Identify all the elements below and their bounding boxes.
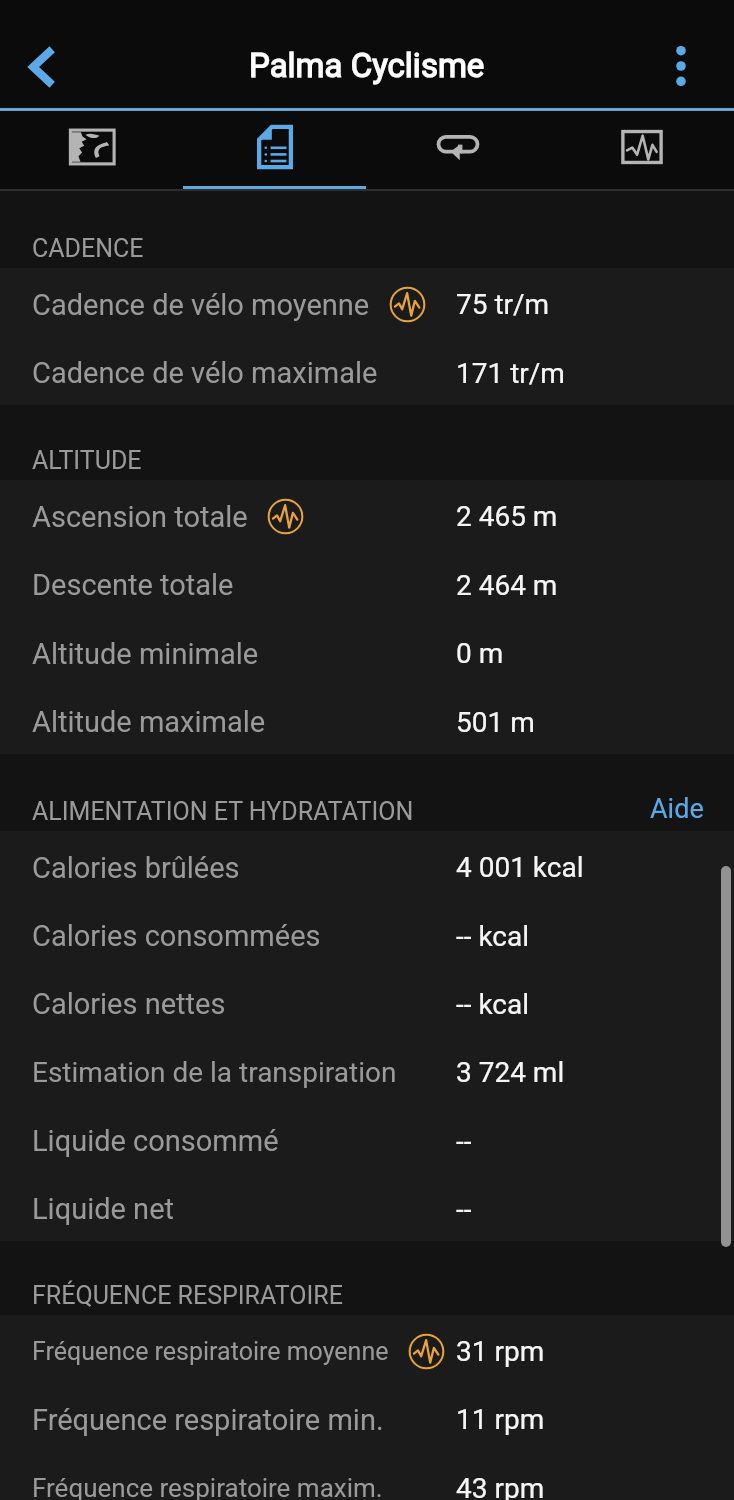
staticText: Altitude maximale bbox=[32, 705, 266, 739]
button[interactable]: Fréquence respiratoire maxim. bbox=[0, 1452, 734, 1500]
button[interactable]: Détails bbox=[183, 111, 366, 191]
staticText: 75 tr/m bbox=[456, 288, 550, 321]
button[interactable]: Liquide consommé bbox=[0, 1105, 734, 1173]
staticText: 171 tr/m bbox=[456, 357, 565, 390]
staticText: Descente totale bbox=[32, 568, 234, 602]
staticText: -- kcal bbox=[456, 920, 530, 953]
staticText: Fréquence respiratoire moyenne bbox=[32, 1337, 389, 1366]
button[interactable]: Descente totale bbox=[0, 549, 734, 617]
button[interactable]: Fréquence respiratoire min. bbox=[0, 1383, 734, 1452]
button[interactable]: Graphiques bbox=[550, 111, 734, 191]
button[interactable]: Aide bbox=[620, 785, 734, 831]
staticText: Calories consommées bbox=[32, 919, 321, 953]
button[interactable]: Calories nettes bbox=[0, 968, 734, 1036]
staticText: Cadence de vélo maximale bbox=[32, 356, 378, 390]
button[interactable]: Calories consommées bbox=[0, 900, 734, 968]
staticText: Cadence de vélo moyenne bbox=[32, 288, 370, 322]
staticText: -- bbox=[456, 1193, 472, 1226]
staticText: -- bbox=[456, 1125, 472, 1158]
button[interactable]: Carte bbox=[0, 111, 183, 191]
staticText: 2 465 m bbox=[456, 500, 558, 533]
staticText: -- kcal bbox=[456, 988, 530, 1021]
staticText: Liquide net bbox=[32, 1192, 174, 1226]
staticText: 501 m bbox=[456, 706, 535, 739]
button[interactable]: Ascension totale bbox=[0, 480, 734, 549]
staticText: Aide bbox=[650, 793, 704, 825]
staticText: Calories nettes bbox=[32, 987, 226, 1021]
button[interactable]: Tours bbox=[366, 111, 550, 191]
staticText: FRÉQUENCE RESPIRATOIRE bbox=[32, 1281, 343, 1310]
staticText: Ascension totale bbox=[32, 500, 248, 534]
staticText: CADENCE bbox=[32, 234, 144, 263]
button[interactable]: Fréquence respiratoire moyenne bbox=[0, 1315, 734, 1383]
staticText: ALIMENTATION ET HYDRATATION bbox=[32, 797, 414, 826]
staticText: Fréquence respiratoire min. bbox=[32, 1403, 384, 1437]
staticText: 31 rpm bbox=[456, 1335, 545, 1368]
button[interactable]: Cadence de vélo maximale bbox=[0, 337, 734, 405]
button[interactable]: Altitude maximale bbox=[0, 686, 734, 754]
staticText: 0 m bbox=[456, 637, 504, 670]
button[interactable]: More options bbox=[651, 36, 711, 96]
button[interactable]: Back bbox=[11, 35, 74, 98]
button[interactable]: Calories brûlées bbox=[0, 831, 734, 900]
button[interactable]: Liquide net bbox=[0, 1173, 734, 1241]
button[interactable]: Estimation de la transpiration bbox=[0, 1036, 734, 1105]
staticText: 3 724 ml bbox=[456, 1056, 565, 1089]
staticText: Altitude minimale bbox=[32, 637, 259, 671]
staticText: Palma Cyclisme bbox=[249, 46, 485, 85]
staticText: 2 464 m bbox=[456, 569, 558, 602]
button[interactable]: Altitude minimale bbox=[0, 617, 734, 686]
staticText: Liquide consommé bbox=[32, 1124, 279, 1158]
staticText: Calories brûlées bbox=[32, 851, 240, 885]
button[interactable]: Cadence de vélo moyenne bbox=[0, 268, 734, 337]
staticText: Estimation de la transpiration bbox=[32, 1056, 397, 1089]
staticText: ALTITUDE bbox=[32, 446, 142, 475]
staticText: Fréquence respiratoire maxim. bbox=[32, 1473, 383, 1500]
staticText: 4 001 kcal bbox=[456, 851, 584, 884]
staticText: 43 rpm bbox=[456, 1472, 545, 1500]
staticText: 11 rpm bbox=[456, 1403, 545, 1436]
